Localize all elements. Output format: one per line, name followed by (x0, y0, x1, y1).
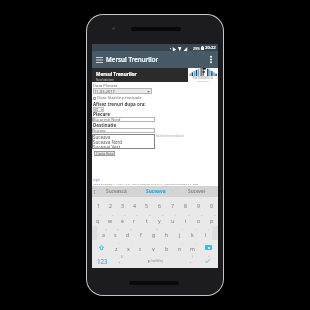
staticText: Mersul Trenurilor (106, 55, 159, 64)
button[interactable]: More options (203, 51, 218, 68)
button[interactable]: 8 (179, 212, 192, 226)
button[interactable]: Doar Statiile principale (93, 95, 142, 101)
button[interactable]: _ (134, 226, 147, 240)
staticText: h (165, 231, 169, 238)
button[interactable]: 7 (166, 197, 179, 212)
button[interactable]: " (122, 240, 134, 254)
staticText: Sucevei (188, 188, 205, 195)
staticText: 6 (162, 213, 164, 216)
button[interactable]: Bucuresti Nord (92, 117, 155, 122)
staticText: / (192, 255, 193, 259)
button[interactable]: 6 (153, 197, 166, 212)
button[interactable]: 0 (205, 197, 218, 212)
button[interactable]: Backspace (199, 240, 218, 254)
button[interactable]: Suceav (92, 128, 155, 133)
button[interactable]: ) (199, 226, 212, 240)
button[interactable]: - (160, 226, 173, 240)
button[interactable]: & (147, 226, 160, 240)
button[interactable]: : (147, 240, 160, 254)
staticText: Afisez trenuri dupa ora: (93, 101, 146, 107)
staticText: * (118, 241, 120, 244)
staticText: 1 (100, 213, 102, 216)
button[interactable]: Keyboard menu (92, 186, 96, 197)
button[interactable]: Enter (197, 254, 218, 268)
staticText: x (127, 245, 130, 252)
button[interactable]: 2 (104, 212, 116, 226)
button[interactable]: Suceava Vest (93, 144, 156, 149)
button[interactable]: ' (134, 240, 147, 254)
staticText: z (115, 245, 118, 252)
staticText: Doar Statiile principale (97, 95, 142, 101)
staticText: p (210, 217, 214, 224)
staticText: 9 (197, 202, 200, 209)
staticText: Sucească (106, 188, 127, 195)
button[interactable]: Cauta Ruta (94, 151, 115, 156)
staticText: Suceava (93, 134, 111, 139)
button[interactable]: Comma (113, 254, 126, 268)
button[interactable]: Suceava (136, 186, 176, 197)
staticText: FEROVIARA S.A. (197, 80, 210, 82)
button[interactable]: @ (97, 226, 109, 240)
staticText: d (126, 231, 130, 238)
staticText: v (152, 245, 155, 252)
button[interactable]: 8 (179, 197, 192, 212)
button[interactable]: Shift (92, 240, 110, 254)
button[interactable]: 1 (92, 197, 104, 212)
staticText: @ (105, 227, 108, 230)
staticText: Mersul Trenurilor (96, 71, 137, 77)
staticText: Data Plecare (93, 83, 118, 89)
staticText: 8 (188, 213, 190, 216)
button[interactable]: Sucevei (176, 186, 216, 197)
staticText: t (146, 217, 148, 224)
button[interactable]: # (109, 226, 121, 240)
button[interactable]: € (121, 226, 134, 240)
button[interactable]: + (173, 226, 186, 240)
button[interactable]: 9 (192, 197, 205, 212)
button[interactable]: 2 (104, 197, 116, 212)
button[interactable]: 5 (140, 197, 153, 212)
button[interactable]: ? (186, 240, 199, 254)
staticText: 00 (94, 107, 99, 112)
staticText: 7 (175, 213, 177, 216)
button[interactable]: 5 (140, 212, 153, 226)
staticText: 2 (112, 213, 114, 216)
button[interactable]: 0 (205, 212, 218, 226)
staticText: j (179, 231, 181, 238)
button[interactable]: 4 (128, 212, 140, 226)
button[interactable]: Sucească (96, 186, 136, 197)
staticText: 7 (171, 202, 174, 209)
button[interactable]: 9 (192, 212, 205, 226)
button[interactable]: ( (186, 226, 199, 240)
button[interactable]: 7 (166, 212, 179, 226)
staticText: ! (182, 241, 183, 244)
staticText: a (102, 231, 105, 238)
button[interactable]: Period (184, 254, 197, 268)
button[interactable]: 6 (153, 212, 166, 226)
button[interactable]: ; (160, 240, 173, 254)
button[interactable]: 123 (92, 254, 113, 268)
button[interactable]: ! (173, 240, 186, 254)
button[interactable]: 1 (92, 212, 104, 226)
button[interactable]: * (110, 240, 122, 254)
button[interactable]: 00 (93, 107, 104, 112)
button[interactable]: 3 (116, 212, 128, 226)
button[interactable]: Legal (93, 178, 100, 182)
staticText: 6 (158, 202, 161, 209)
staticText: 11-03-2017 (94, 89, 115, 94)
button[interactable]: 3 (116, 197, 128, 212)
staticText: n (178, 245, 182, 252)
button[interactable]: Navigation menu (92, 51, 106, 68)
staticText: + (182, 227, 184, 230)
staticText: Bucuresti Nord (93, 117, 121, 122)
button[interactable]: Space (126, 254, 184, 268)
staticText: b (165, 245, 169, 252)
button[interactable]: 11-03-2017 (93, 88, 152, 94)
button[interactable]: Suceava (93, 134, 156, 139)
staticText: 5 (149, 213, 151, 216)
staticText: (statii intermediare) (156, 134, 184, 138)
button[interactable]: Suceava Nord (93, 139, 156, 144)
staticText: 4 (133, 202, 136, 209)
button[interactable]: 4 (128, 197, 140, 212)
